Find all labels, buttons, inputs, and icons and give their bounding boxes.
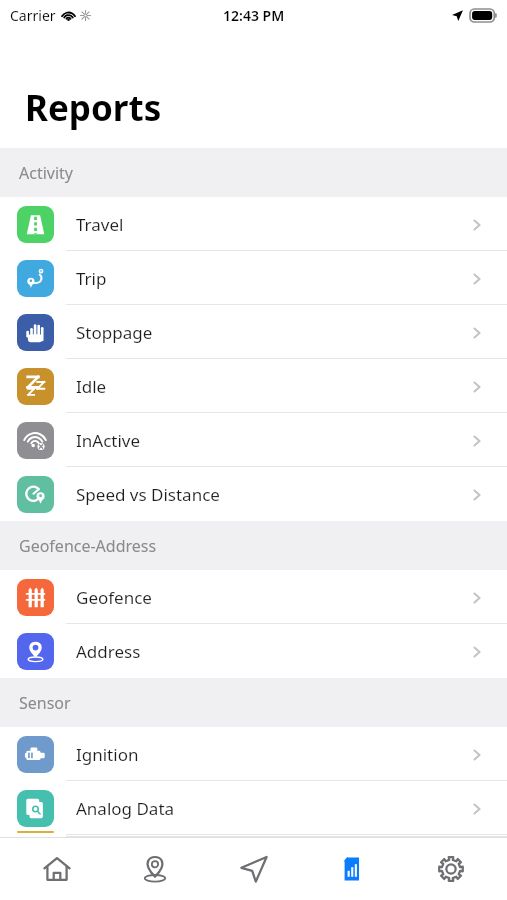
- staticText: Geofence-Address: [19, 535, 157, 557]
- button[interactable]: Ignition: [0, 727, 507, 781]
- button[interactable]: Stoppage: [0, 305, 507, 359]
- staticText: Analog Data: [76, 797, 175, 820]
- button[interactable]: InActive: [0, 413, 507, 467]
- button[interactable]: Reports: [310, 837, 395, 900]
- button[interactable]: Idle: [0, 359, 507, 413]
- staticText: Activity: [19, 162, 74, 184]
- button[interactable]: Settings: [408, 837, 493, 900]
- button[interactable]: Home: [14, 837, 99, 900]
- staticText: Stoppage: [76, 321, 153, 344]
- button[interactable]: Navigate: [211, 837, 296, 900]
- button[interactable]: Trip: [0, 251, 507, 305]
- staticText: Carrier: [10, 6, 56, 25]
- button[interactable]: Map: [112, 837, 197, 900]
- staticText: Idle: [76, 375, 107, 398]
- staticText: InActive: [76, 429, 141, 452]
- staticText: Ignition: [76, 743, 139, 766]
- button[interactable]: Geofence: [0, 570, 507, 624]
- staticText: Speed vs Distance: [76, 483, 220, 506]
- staticText: Reports: [25, 84, 162, 132]
- staticText: Sensor: [19, 692, 71, 714]
- button[interactable]: [0, 835, 507, 837]
- button[interactable]: Analog Data: [0, 781, 507, 835]
- staticText: Address: [76, 640, 141, 663]
- button[interactable]: Address: [0, 624, 507, 678]
- button[interactable]: Speed vs Distance: [0, 467, 507, 521]
- staticText: Geofence: [76, 586, 152, 609]
- staticText: Travel: [76, 213, 124, 236]
- button[interactable]: Travel: [0, 197, 507, 251]
- staticText: Trip: [76, 267, 107, 290]
- staticText: 12:43 PM: [223, 6, 285, 25]
